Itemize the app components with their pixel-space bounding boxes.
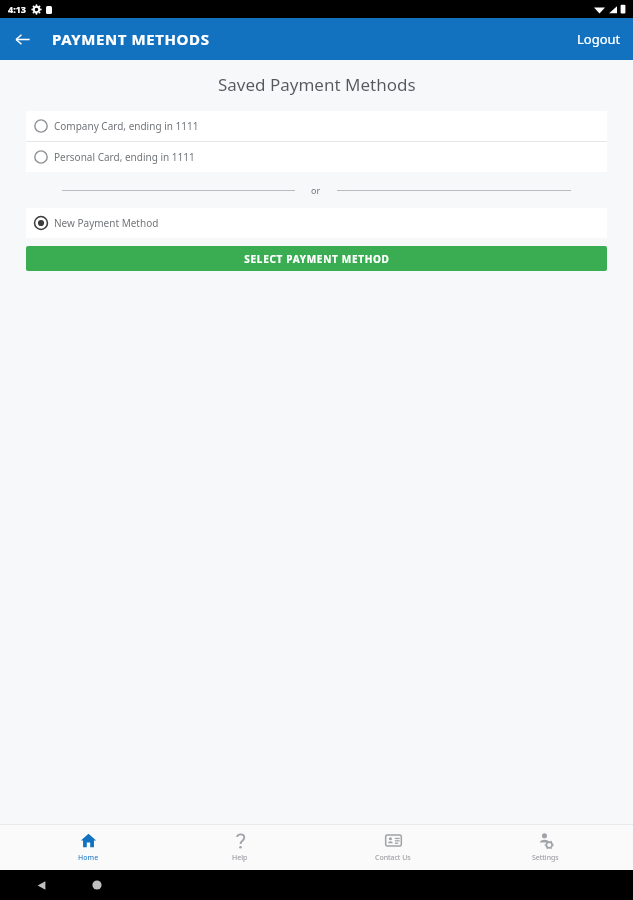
button[interactable]: Home: [86, 874, 108, 896]
button[interactable]: Logout: [565, 20, 633, 58]
staticText: Saved Payment Methods: [218, 73, 416, 96]
staticText: Personal Card, ending in 1111: [54, 150, 195, 164]
button[interactable]: Contact Us: [328, 824, 458, 870]
staticText: SELECT PAYMENT METHOD: [244, 252, 390, 266]
staticText: or: [311, 184, 321, 196]
staticText: Settings: [532, 853, 559, 863]
staticText: Home: [78, 853, 99, 863]
staticText: Logout: [577, 30, 621, 48]
staticText: 4:13: [8, 3, 26, 15]
staticText: PAYMENT METHODS: [52, 29, 210, 49]
button[interactable]: Settings: [480, 824, 610, 870]
staticText: Contact Us: [375, 853, 411, 863]
button[interactable]: Home: [23, 824, 153, 870]
button[interactable]: New Payment Method: [26, 208, 607, 238]
staticText: New Payment Method: [54, 216, 159, 230]
button[interactable]: Help: [175, 824, 305, 870]
button[interactable]: SELECT PAYMENT METHOD: [26, 246, 607, 271]
staticText: Help: [232, 853, 248, 863]
staticText: Company Card, ending in 1111: [54, 119, 199, 133]
button[interactable]: Back: [0, 18, 44, 60]
button[interactable]: Company Card, ending in 1111: [26, 111, 607, 141]
button[interactable]: Back: [30, 874, 52, 896]
button[interactable]: Personal Card, ending in 1111: [26, 142, 607, 172]
